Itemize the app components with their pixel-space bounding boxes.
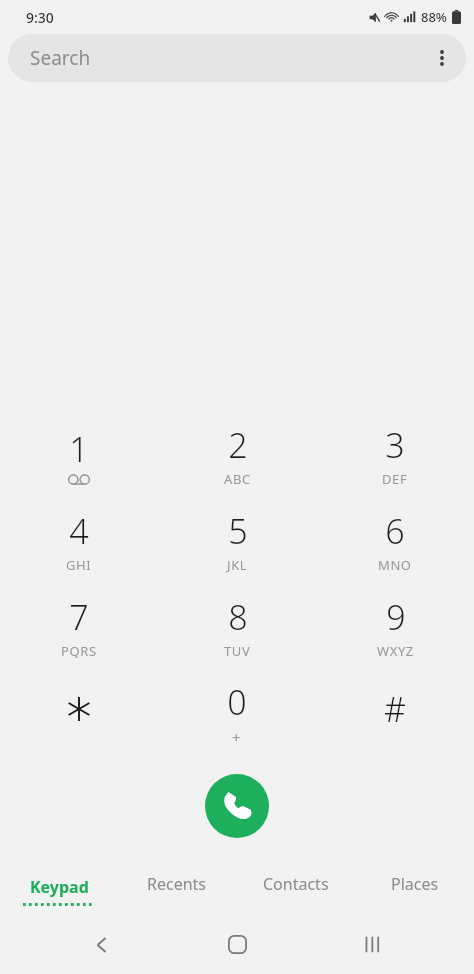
staticText: 7	[69, 594, 89, 640]
staticText: Keypad	[30, 876, 89, 898]
staticText: Search	[30, 45, 91, 71]
staticText: Recents	[147, 873, 207, 895]
button[interactable]: 6	[316, 498, 474, 584]
button[interactable]: Back	[34, 915, 170, 974]
button[interactable]: Recents	[118, 869, 236, 913]
button[interactable]: Search	[8, 34, 466, 82]
staticText: ABC	[224, 470, 251, 488]
staticText: 4	[69, 508, 89, 554]
staticText: MNO	[378, 556, 412, 574]
staticText: 5	[228, 508, 248, 554]
staticText: 3	[385, 422, 405, 468]
staticText: 8	[228, 594, 248, 640]
button[interactable]: 9	[316, 584, 474, 670]
staticText: TUV	[224, 642, 251, 660]
button[interactable]: 5	[158, 498, 316, 584]
staticText: Contacts	[263, 873, 329, 895]
staticText: 88%	[421, 8, 447, 26]
staticText: 9	[386, 594, 406, 640]
staticText: 6	[385, 508, 405, 554]
staticText: Places	[391, 873, 439, 895]
button[interactable]: 7	[0, 584, 158, 670]
staticText: WXYZ	[377, 642, 414, 660]
button[interactable]: Places	[355, 869, 474, 913]
staticText: 2	[228, 422, 248, 468]
staticText: 9:30	[26, 8, 54, 27]
button[interactable]: 8	[158, 584, 316, 670]
button[interactable]: 0	[158, 670, 316, 756]
button[interactable]: Keypad	[0, 869, 118, 913]
button[interactable]: Recent apps	[305, 915, 440, 974]
staticText: JKL	[227, 556, 248, 574]
button[interactable]	[0, 670, 158, 756]
button[interactable]: 2	[158, 412, 316, 498]
staticText: GHI	[66, 556, 92, 574]
button[interactable]: #	[316, 670, 474, 756]
button[interactable]: 4	[0, 498, 158, 584]
button[interactable]: Contacts	[236, 869, 355, 913]
button[interactable]: 3	[316, 412, 474, 498]
button[interactable]: Call	[205, 774, 269, 838]
staticText: +	[232, 727, 242, 747]
staticText: PQRS	[61, 642, 97, 660]
button[interactable]: 1	[0, 412, 158, 498]
staticText: 1	[69, 426, 89, 472]
staticText: DEF	[382, 470, 408, 488]
button[interactable]: More options	[418, 34, 466, 82]
button[interactable]: Home	[170, 915, 305, 974]
staticText: #	[384, 686, 406, 732]
staticText: 0	[227, 679, 247, 725]
